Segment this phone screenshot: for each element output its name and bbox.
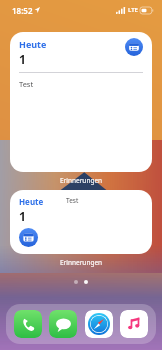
button[interactable]: Erinnerungen (125, 38, 143, 56)
staticText: Erinnerungen (60, 258, 103, 267)
button[interactable]: Heute (10, 190, 152, 254)
button[interactable]: Safari (85, 310, 113, 338)
staticText: Test (19, 79, 34, 89)
staticText: LTE (128, 6, 138, 14)
staticText: Erinnerungen (60, 176, 103, 185)
button[interactable]: Telefon (14, 310, 42, 338)
staticText: Test (66, 196, 79, 205)
staticText: 1 (19, 51, 26, 67)
staticText: 18:52 (12, 5, 33, 16)
button[interactable]: Musik (120, 310, 148, 338)
button[interactable]: Erinnerungen öffnen (19, 228, 38, 247)
button[interactable]: Heute (10, 32, 152, 172)
button[interactable]: Nachrichten (49, 310, 77, 338)
staticText: 1 (19, 208, 26, 224)
staticText: Heute (19, 196, 44, 207)
staticText: Heute (19, 38, 47, 50)
